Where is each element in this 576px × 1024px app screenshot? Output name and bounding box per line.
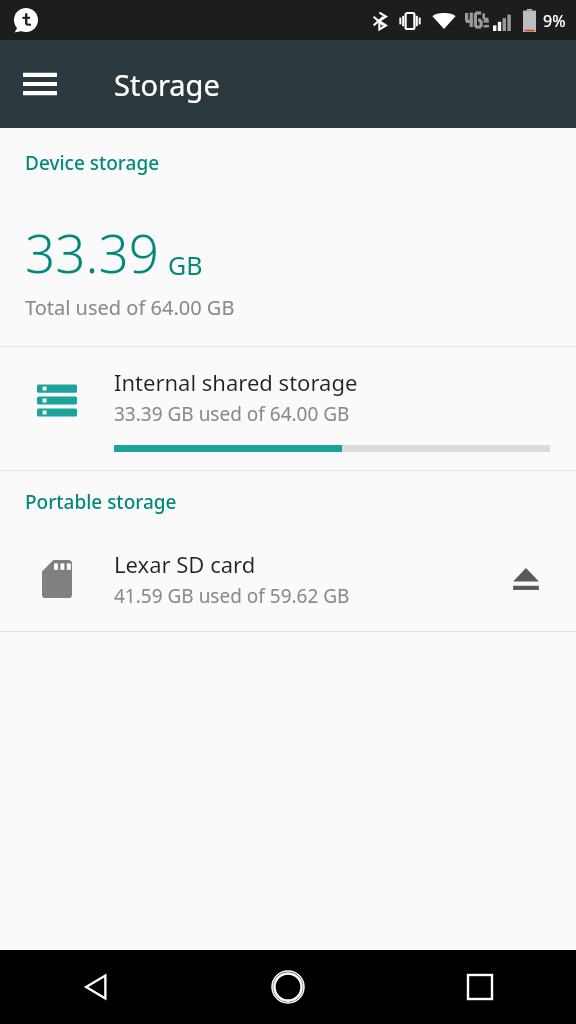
staticText: GB: [168, 248, 203, 282]
button[interactable]: Eject SD card: [502, 555, 550, 603]
staticText: 9%: [543, 10, 566, 32]
button[interactable]: Lexar SD card: [0, 543, 576, 631]
button[interactable]: Back: [0, 950, 192, 1024]
staticText: 33.39 GB used of 64.00 GB: [114, 401, 350, 427]
button[interactable]: Home: [192, 950, 384, 1024]
staticText: Internal shared storage: [114, 367, 358, 397]
staticText: 33.39: [25, 216, 159, 288]
button[interactable]: Recent apps: [384, 950, 576, 1024]
staticText: 41.59 GB used of 59.62 GB: [114, 583, 350, 609]
staticText: Storage: [114, 65, 220, 104]
button[interactable]: Internal shared storage: [0, 347, 576, 470]
staticText: Total used of 64.00 GB: [25, 294, 235, 321]
staticText: Lexar SD card: [114, 549, 256, 579]
staticText: Portable storage: [25, 489, 177, 515]
staticText: Device storage: [25, 150, 160, 176]
button[interactable]: Open navigation menu: [12, 56, 68, 112]
